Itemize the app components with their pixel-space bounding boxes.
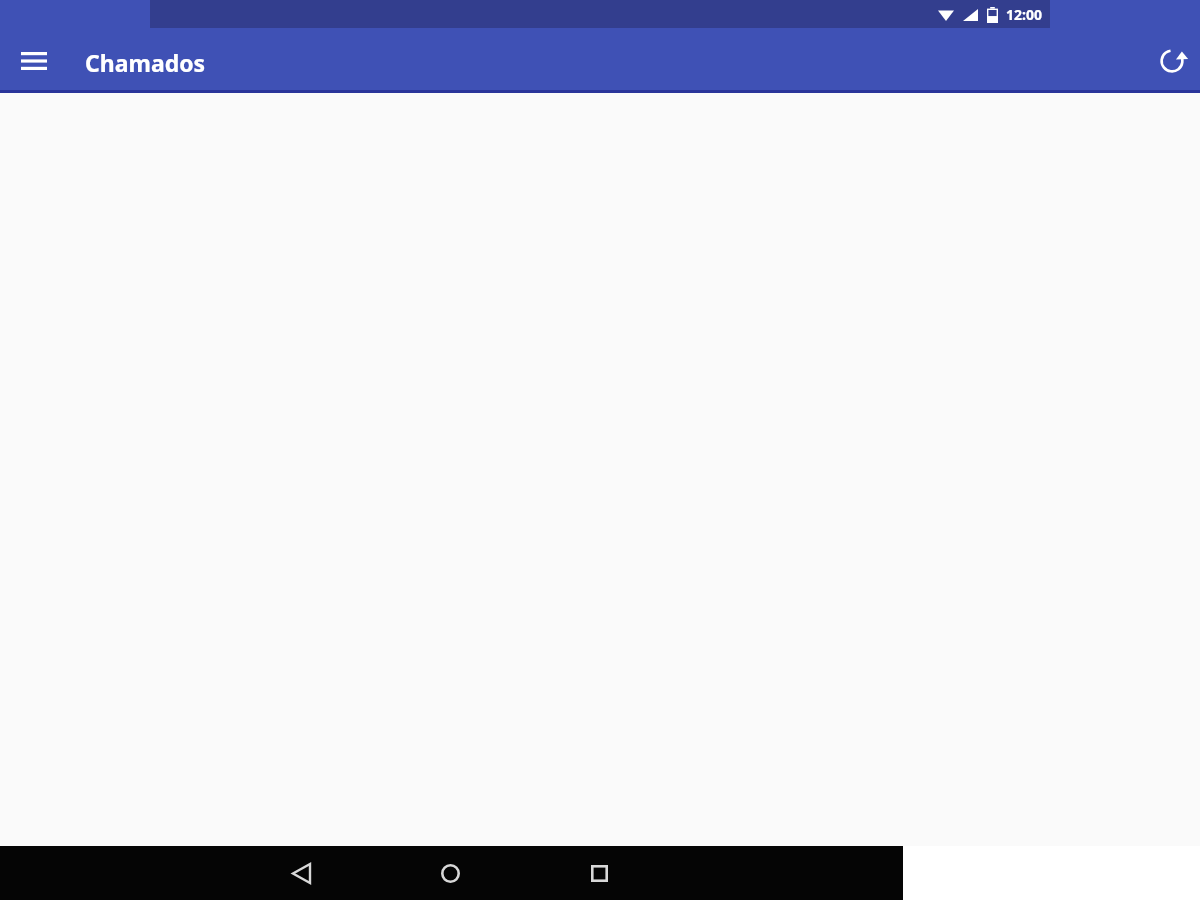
button[interactable]: Open navigation drawer: [4, 37, 64, 85]
button[interactable]: Refresh: [1148, 37, 1196, 85]
staticText: Chamados: [85, 47, 206, 78]
button[interactable]: Recent apps: [575, 849, 623, 897]
button[interactable]: Home: [426, 849, 474, 897]
staticText: 12:00: [1006, 5, 1042, 24]
button[interactable]: Back: [277, 849, 325, 897]
